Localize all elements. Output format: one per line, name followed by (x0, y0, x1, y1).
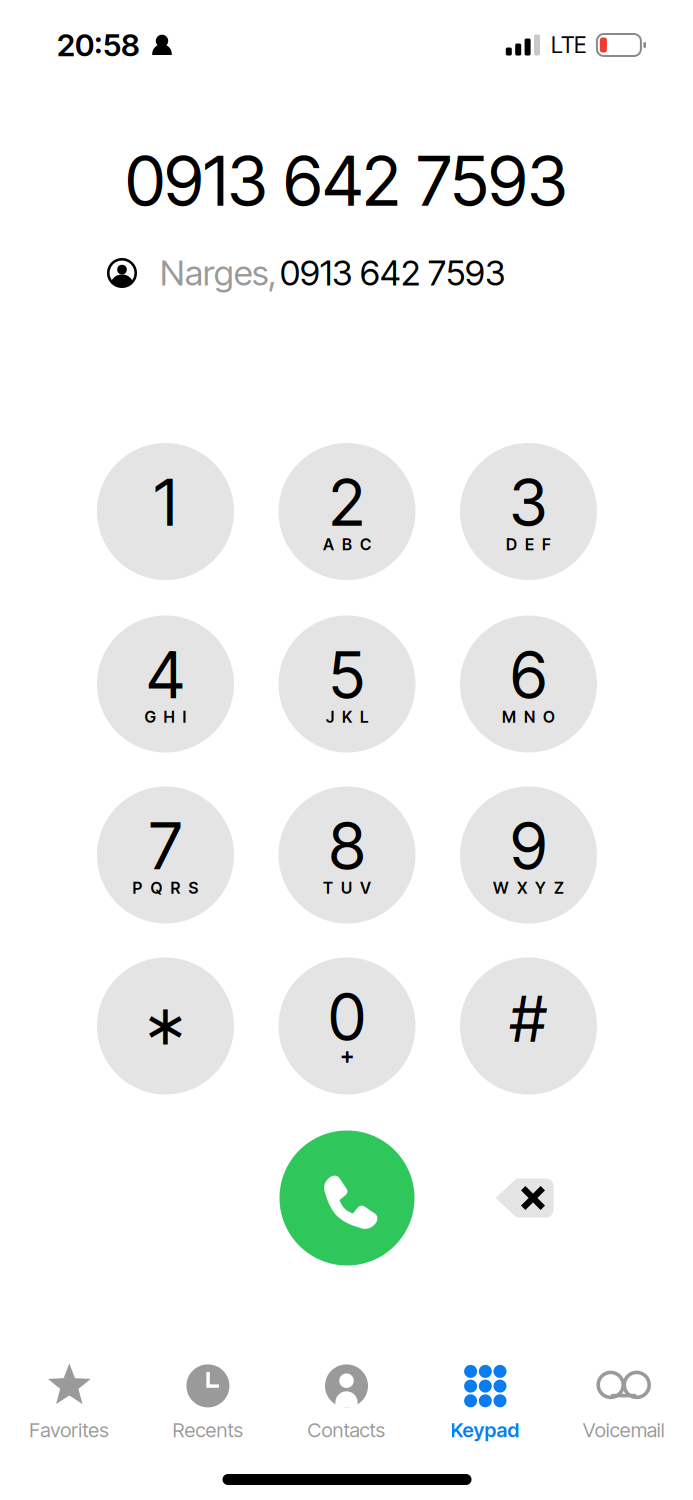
button[interactable]: Contacts (277, 1364, 416, 1442)
staticText: D E F (506, 535, 551, 554)
staticText: M N O (502, 707, 555, 727)
button[interactable]: 5 (278, 615, 415, 752)
button[interactable]: Recents (139, 1364, 277, 1442)
button[interactable]: # (460, 957, 597, 1094)
button[interactable]: 4 (97, 615, 234, 752)
staticText: 5 (329, 636, 365, 714)
staticText: 2 (329, 464, 365, 541)
staticText: 1 (154, 464, 177, 541)
staticText: 7 (149, 807, 182, 885)
staticText: T U V (323, 878, 371, 898)
staticText: Voicemail (583, 1418, 665, 1442)
button[interactable]: Voicemail (554, 1364, 693, 1442)
button[interactable]: 0 (278, 957, 415, 1094)
button[interactable]: 2 (278, 443, 415, 580)
staticText: 0913 642 7593 (125, 140, 567, 222)
staticText: Favorites (29, 1418, 109, 1442)
staticText: ∗ (142, 992, 189, 1058)
staticText: 9 (510, 807, 546, 885)
staticText: W X Y Z (493, 878, 564, 898)
staticText: 3 (509, 464, 547, 541)
button[interactable]: 6 (460, 615, 597, 752)
staticText: Narges, (160, 252, 277, 294)
button[interactable]: 1 (97, 443, 234, 580)
button[interactable]: 3 (460, 443, 597, 580)
staticText: G H I (144, 707, 186, 727)
staticText: + (340, 1042, 354, 1070)
staticText: J K L (326, 707, 368, 727)
staticText: Keypad (451, 1418, 520, 1442)
staticText: P Q R S (132, 878, 198, 898)
staticText: 0913 642 7593 (280, 252, 505, 294)
button[interactable]: ∗ (97, 957, 234, 1094)
staticText: 6 (510, 636, 546, 714)
button[interactable]: 9 (460, 786, 597, 923)
button[interactable]: Favorites (0, 1364, 139, 1442)
staticText: A B C (323, 535, 371, 554)
button[interactable]: Delete (480, 1153, 570, 1243)
staticText: 4 (146, 636, 184, 714)
staticText: # (510, 981, 547, 1057)
staticText: Recents (172, 1418, 243, 1442)
staticText: 8 (329, 807, 365, 885)
button[interactable]: Keypad (416, 1364, 554, 1442)
staticText: LTE (551, 31, 586, 59)
button[interactable]: Call (279, 1130, 414, 1265)
staticText: Contacts (307, 1418, 385, 1442)
button[interactable]: 7 (97, 786, 234, 923)
staticText: 0 (328, 978, 365, 1056)
button[interactable]: 8 (278, 786, 415, 923)
staticText: 20:58 (57, 26, 140, 63)
